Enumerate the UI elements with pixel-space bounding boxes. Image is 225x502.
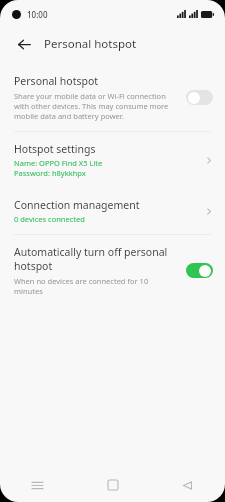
staticText: 0 devices connected [14,214,85,224]
button[interactable]: Personal hotspot [0,66,225,131]
staticText: Share your mobile data or Wi-Fi connecti… [14,91,178,121]
staticText: Password: h8ykkhpx [14,168,86,178]
button[interactable]: Back [150,468,225,502]
button[interactable]: Toggle on [186,263,213,278]
button[interactable]: Automatically turn off personal hotspot [0,235,225,306]
button[interactable]: Connection management [0,188,225,234]
staticText: Connection management [14,198,140,212]
staticText: 10:00 [27,9,48,20]
staticText: Personal hotspot [44,36,137,52]
button[interactable]: Hotspot settings [0,132,225,188]
staticText: Automatically turn off personal hotspot [14,245,178,273]
button[interactable]: Recents [0,468,75,502]
button[interactable]: Toggle off [186,90,213,105]
staticText: Personal hotspot [14,74,99,88]
staticText: Hotspot settings [14,142,96,156]
button[interactable]: Home [75,468,150,502]
button[interactable]: Back [12,32,36,56]
staticText: When no devices are connected for 10 min… [14,276,178,296]
staticText: Name: OPPO Find X5 Lite [14,158,103,168]
